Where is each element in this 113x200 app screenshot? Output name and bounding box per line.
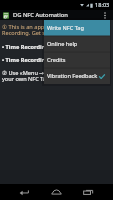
button[interactable]: Write NFC Tag [44, 20, 110, 36]
staticText: 18:03 [95, 1, 110, 9]
staticText: Credits [47, 56, 66, 64]
button[interactable]: Credits [44, 52, 110, 68]
button[interactable]: Vibration Feedback [44, 68, 110, 84]
staticText: DG NFC Automation [13, 11, 68, 19]
staticText: ① This is an app for easy NFC Tag Record… [2, 23, 111, 37]
button[interactable]: More options [100, 10, 109, 20]
staticText: Vibration Feedback [47, 72, 98, 80]
button[interactable]: Online help [44, 36, 110, 52]
staticText: Write NFC Tag [47, 24, 84, 32]
staticText: Online help [47, 40, 78, 48]
staticText: • Time Recording with your own NFC Tag [2, 56, 111, 64]
staticText: • Time Recording with your own NFC Tag [2, 43, 111, 51]
button[interactable]: Back [13, 184, 36, 200]
button[interactable]: Recent apps [77, 184, 100, 200]
staticText: ② Use «Menu → Write NFC Tag» to write yo… [2, 69, 111, 83]
button[interactable]: Home [45, 184, 68, 200]
